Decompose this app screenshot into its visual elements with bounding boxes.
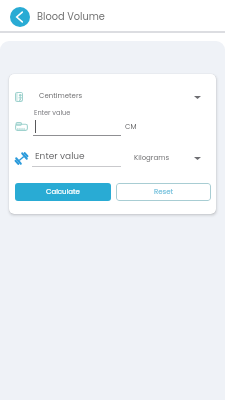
button[interactable]: Calculate bbox=[15, 183, 111, 201]
staticText: Centimeters bbox=[39, 91, 83, 101]
staticText: Calculate bbox=[46, 187, 80, 197]
staticText: Enter value bbox=[35, 150, 85, 163]
staticText: Reset bbox=[154, 187, 174, 197]
button[interactable]: Back bbox=[10, 7, 30, 27]
staticText: CM bbox=[125, 122, 137, 132]
button[interactable]: Reset bbox=[116, 183, 211, 201]
staticText: Kilograms bbox=[134, 153, 170, 163]
staticText: Blood Volume bbox=[37, 10, 105, 24]
staticText: Enter value bbox=[34, 108, 71, 117]
